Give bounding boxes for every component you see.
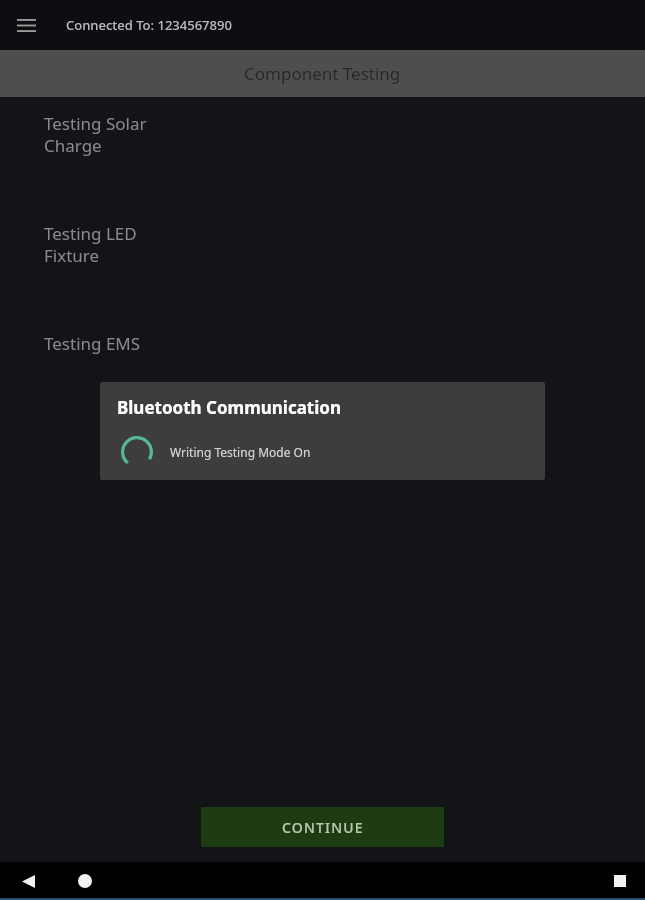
staticText: CONTINUE (282, 818, 364, 837)
button[interactable]: Recent apps (600, 862, 640, 900)
staticText: Bluetooth Communication (117, 396, 342, 419)
staticText: Connected To: 1234567890 (66, 16, 232, 34)
button[interactable]: Testing LED Fixture (0, 220, 645, 269)
staticText: Testing LED Fixture (44, 222, 137, 267)
staticText: Writing Testing Mode On (170, 444, 311, 460)
staticText: Testing Solar Charge (44, 112, 147, 157)
button[interactable]: Testing Solar Charge (0, 110, 645, 159)
staticText: Testing EMS (44, 332, 141, 355)
button[interactable]: CONTINUE (201, 807, 444, 847)
staticText: Component Testing (244, 62, 401, 85)
button[interactable]: Open navigation menu (10, 9, 42, 41)
button[interactable]: Home (65, 862, 105, 900)
button[interactable]: Testing EMS (0, 330, 645, 357)
button[interactable]: Back (8, 862, 48, 900)
